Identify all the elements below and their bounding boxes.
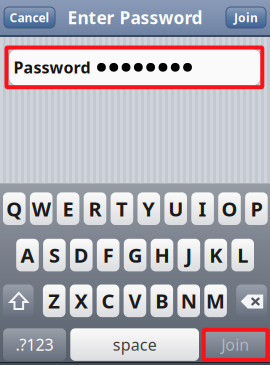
staticText: Join <box>234 9 258 25</box>
button[interactable]: X <box>70 284 92 317</box>
button[interactable]: K <box>204 239 227 271</box>
staticText: Password <box>13 57 90 78</box>
button[interactable]: N <box>177 284 200 317</box>
staticText: .?123 <box>15 334 53 355</box>
button[interactable]: Q <box>3 192 26 225</box>
staticText: H <box>154 242 169 268</box>
button[interactable]: L <box>231 239 254 271</box>
staticText: P <box>250 195 262 222</box>
button[interactable]: A <box>16 239 39 271</box>
button[interactable]: space <box>70 328 199 361</box>
staticText: W <box>32 195 51 222</box>
staticText: R <box>88 195 101 222</box>
staticText: E <box>63 195 74 222</box>
button[interactable]: Delete <box>236 284 267 317</box>
staticText: V <box>128 287 141 314</box>
staticText: F <box>103 242 114 268</box>
staticText: I <box>199 195 207 222</box>
button[interactable]: Cancel <box>4 7 55 28</box>
staticText: Join <box>221 334 249 355</box>
button[interactable]: M <box>204 284 227 317</box>
staticText: G <box>128 242 142 268</box>
button[interactable]: Y <box>137 192 160 225</box>
staticText: Q <box>6 195 22 222</box>
staticText: K <box>209 242 222 268</box>
button[interactable]: E <box>57 192 79 225</box>
staticText: A <box>20 242 34 268</box>
staticText: C <box>101 287 114 314</box>
staticText: T <box>116 195 128 222</box>
staticText: Z <box>48 287 60 314</box>
staticText: O <box>221 195 237 222</box>
button[interactable]: T <box>111 192 133 225</box>
button[interactable]: I <box>191 192 214 225</box>
button[interactable]: H <box>151 239 173 271</box>
staticText: N <box>181 287 197 314</box>
staticText: Y <box>142 195 155 222</box>
button[interactable]: V <box>124 284 146 317</box>
staticText: U <box>168 195 183 222</box>
staticText: J <box>185 242 192 268</box>
staticText: Cancel <box>9 9 49 25</box>
button[interactable]: J <box>178 239 200 271</box>
staticText: L <box>237 242 248 268</box>
staticText: M <box>206 287 225 314</box>
staticText: B <box>155 287 168 314</box>
button[interactable]: S <box>43 239 66 271</box>
staticText: X <box>75 287 88 314</box>
button[interactable]: W <box>30 192 52 225</box>
staticText: D <box>74 242 89 268</box>
button[interactable]: F <box>97 239 119 271</box>
button[interactable]: R <box>84 192 106 225</box>
button[interactable]: O <box>218 192 241 225</box>
button[interactable]: .?123 <box>3 328 66 361</box>
staticText: Enter Password <box>67 6 202 29</box>
button[interactable]: Z <box>43 284 65 317</box>
staticText: S <box>49 242 60 268</box>
button[interactable]: P <box>245 192 268 225</box>
button[interactable]: Join <box>205 328 266 361</box>
button[interactable]: B <box>150 284 173 317</box>
button[interactable]: G <box>124 239 146 271</box>
button[interactable]: D <box>70 239 93 271</box>
button[interactable]: C <box>97 284 119 317</box>
button[interactable]: Shift <box>3 284 34 317</box>
staticText: space <box>113 334 157 355</box>
button[interactable]: Join <box>226 7 266 28</box>
button[interactable]: U <box>164 192 187 225</box>
